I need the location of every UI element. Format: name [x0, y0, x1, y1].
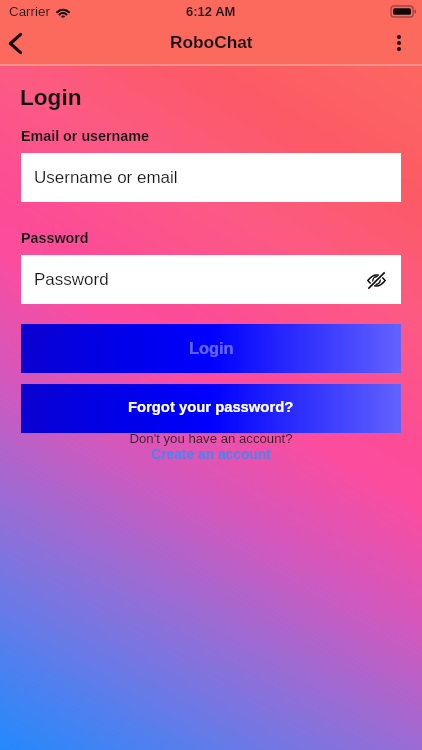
staticText: Password	[34, 270, 109, 289]
staticText: Email or username	[21, 128, 149, 144]
staticText: Carrier	[9, 4, 50, 19]
button[interactable]: Show password	[363, 267, 389, 293]
staticText: Login	[189, 339, 234, 357]
button[interactable]: Username or email	[21, 153, 401, 202]
button[interactable]: More options	[377, 24, 422, 64]
staticText: Forgot your password?	[128, 399, 294, 416]
button[interactable]: Password	[21, 255, 401, 304]
staticText: 6:12 AM	[186, 4, 236, 19]
staticText: Login	[20, 85, 82, 110]
button[interactable]: Forgot your password?	[21, 384, 401, 433]
button[interactable]: Create an account	[21, 447, 401, 462]
staticText: Username or email	[34, 168, 178, 187]
staticText: RoboChat	[170, 32, 253, 51]
button[interactable]: Login	[21, 324, 401, 373]
button[interactable]: Back	[0, 24, 30, 64]
staticText: Don't you have an account?	[21, 431, 401, 446]
staticText: Password	[21, 230, 89, 246]
